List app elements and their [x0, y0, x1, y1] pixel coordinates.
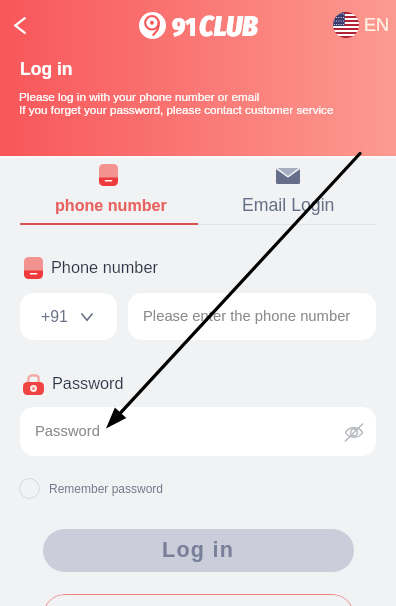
button[interactable]: Language EN — [333, 12, 390, 38]
staticText: Password — [52, 374, 124, 392]
button[interactable]: Password — [20, 407, 376, 456]
button[interactable]: Back — [5, 10, 35, 40]
staticText: Log in — [20, 59, 73, 79]
staticText: EN — [364, 15, 390, 35]
button[interactable]: +91 — [20, 293, 117, 340]
button[interactable]: Remember password — [19, 478, 164, 499]
staticText: Remember password — [49, 482, 164, 495]
staticText: Please log in with your phone number or … — [19, 90, 260, 103]
staticText: If you forget your password, please cont… — [19, 103, 334, 116]
button[interactable]: Register — [43, 594, 354, 606]
staticText: Password — [35, 423, 100, 440]
staticText: CLUB — [199, 10, 258, 44]
staticText: Please enter the phone number — [143, 308, 351, 325]
button[interactable]: Email Login — [198, 156, 376, 224]
staticText: phone number — [55, 196, 167, 214]
staticText: 91 — [172, 13, 197, 43]
button[interactable]: Log in — [43, 529, 354, 572]
staticText: Phone number — [51, 258, 158, 276]
button[interactable]: Please enter the phone number — [128, 293, 376, 340]
staticText: Email Login — [242, 195, 335, 215]
button[interactable]: Show password — [340, 418, 368, 446]
staticText: +91 — [41, 308, 68, 326]
staticText: Log in — [162, 538, 235, 562]
button[interactable]: phone number — [20, 156, 198, 224]
